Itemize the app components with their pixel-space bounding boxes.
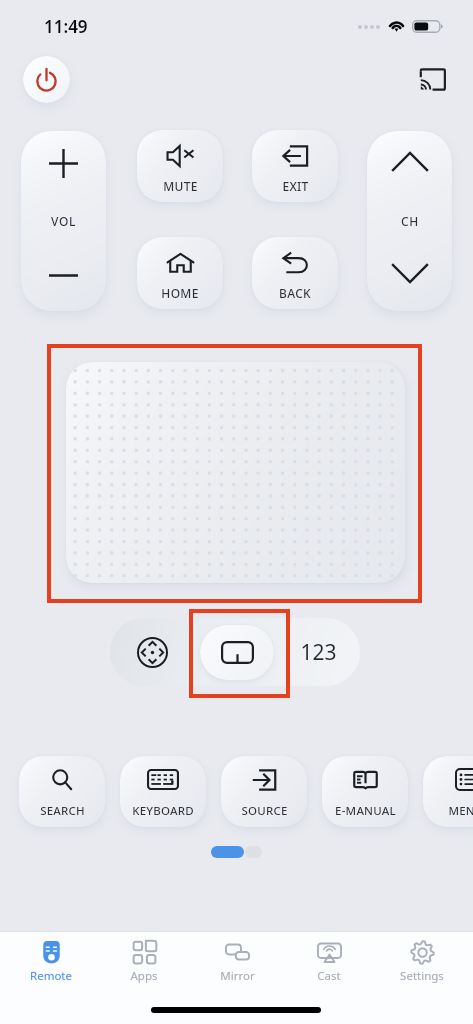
button[interactable]: E-MANUAL — [322, 756, 408, 827]
staticText: Settings — [400, 968, 444, 984]
staticText: E-MANUAL — [335, 803, 396, 819]
button[interactable]: MENU — [423, 756, 473, 827]
staticText: MUTE — [163, 178, 198, 194]
staticText: BACK — [279, 285, 311, 301]
staticText: 11:49 — [44, 15, 88, 38]
button[interactable]: Touchpad mode — [200, 625, 274, 680]
button[interactable]: MUTE — [137, 130, 223, 202]
staticText: CH — [401, 213, 419, 229]
button[interactable]: Settings — [380, 940, 464, 984]
button[interactable]: Cast to device — [408, 55, 456, 103]
button[interactable]: D-pad mode — [127, 627, 177, 677]
button[interactable]: Apps — [102, 940, 186, 984]
button[interactable]: Volume — [21, 131, 106, 311]
button[interactable]: Mirror — [195, 940, 279, 984]
staticText: MENU — [448, 803, 473, 819]
staticText: SEARCH — [40, 803, 85, 819]
staticText: HOME — [161, 285, 199, 301]
button[interactable]: Remote — [9, 940, 93, 984]
staticText: KEYBOARD — [132, 803, 194, 819]
button[interactable]: Touchpad — [66, 362, 405, 583]
staticText: VOL — [51, 213, 76, 229]
staticText: EXIT — [282, 178, 309, 194]
staticText: 123 — [300, 638, 337, 667]
staticText: SOURCE — [241, 803, 288, 819]
button[interactable]: SEARCH — [19, 756, 105, 827]
button[interactable]: Cast — [287, 940, 371, 984]
staticText: Remote — [30, 968, 72, 984]
button[interactable]: 123 — [290, 627, 346, 677]
button[interactable]: EXIT — [252, 130, 338, 202]
button[interactable]: Channel — [367, 131, 452, 311]
button[interactable]: Power — [23, 56, 70, 103]
staticText: Mirror — [220, 968, 255, 984]
button[interactable]: BACK — [252, 237, 338, 309]
staticText: Cast — [317, 968, 341, 984]
button[interactable]: KEYBOARD — [120, 756, 206, 827]
button[interactable]: SOURCE — [221, 756, 307, 827]
button[interactable]: HOME — [137, 237, 223, 309]
staticText: Apps — [130, 968, 158, 984]
